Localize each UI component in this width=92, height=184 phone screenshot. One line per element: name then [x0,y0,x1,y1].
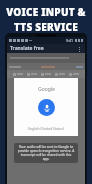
staticText: Google [38,86,55,93]
button[interactable]: Tool 4 [69,70,79,78]
button[interactable]: More options [76,45,82,53]
staticText: 9:41 [66,38,73,43]
button[interactable]: Tool 0 [13,70,23,78]
staticText: Your audio will be sent to Google to pro… [17,145,75,161]
button[interactable]: Tool 2 [41,70,51,78]
button[interactable]: Speak now [38,99,55,116]
staticText: English (United States) [28,126,64,131]
staticText: Translate free [10,45,44,52]
button[interactable]: Tool 3 [55,70,65,78]
staticText: TTS SERVICE [14,20,78,34]
button[interactable]: Your audio will be sent to Google to pro… [14,143,78,163]
staticText: VOICE INPUT & [6,5,86,19]
button[interactable]: Tool 1 [27,70,37,78]
